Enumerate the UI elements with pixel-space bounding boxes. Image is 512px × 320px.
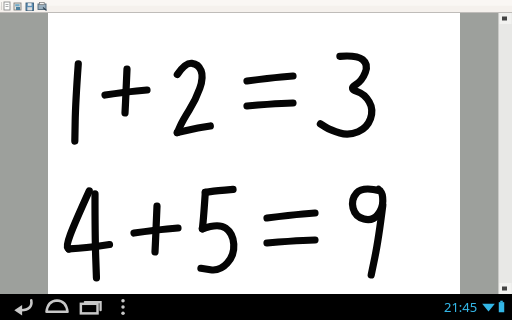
button[interactable] <box>48 13 460 294</box>
button[interactable]: Back <box>6 294 40 320</box>
button[interactable]: Open <box>15 0 27 13</box>
staticText: 21:45 <box>444 298 478 316</box>
button[interactable]: More options <box>108 294 138 320</box>
button[interactable]: Status: 21:45, wifi connected, battery <box>444 297 512 317</box>
button[interactable]: Recent apps <box>74 294 108 320</box>
button[interactable]: Home <box>40 294 74 320</box>
button[interactable]: New document <box>3 0 15 13</box>
button[interactable]: Print <box>39 0 51 13</box>
button[interactable]: Save <box>27 0 39 13</box>
